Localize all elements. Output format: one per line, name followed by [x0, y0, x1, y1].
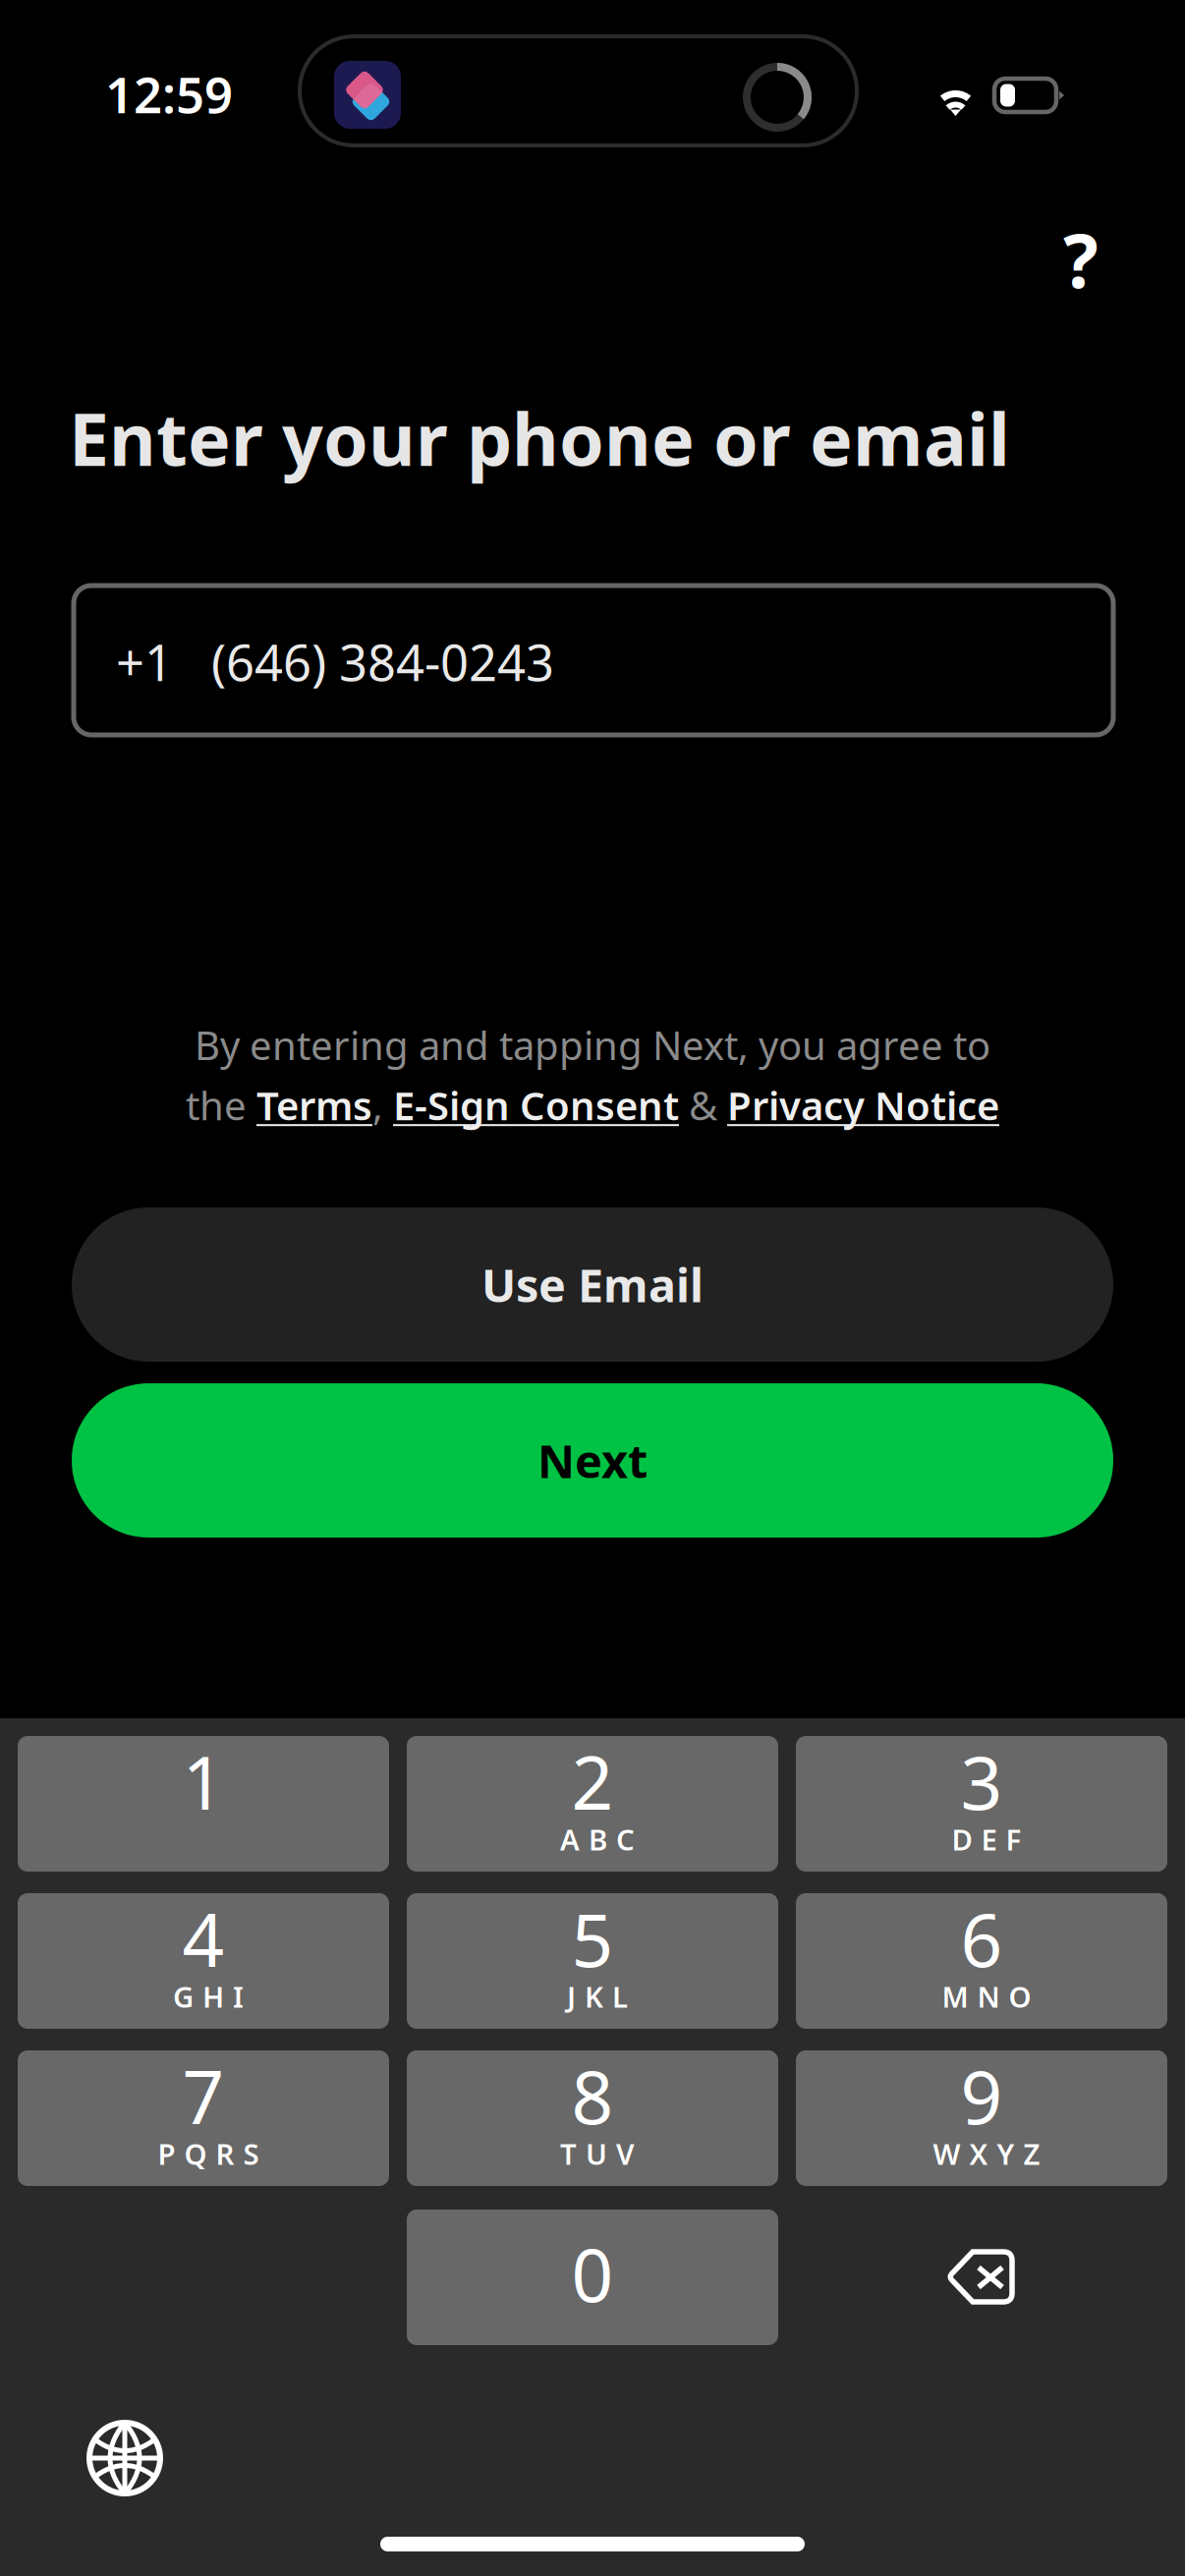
button[interactable]: Use Email	[72, 1207, 1113, 1362]
staticText: 3	[960, 1732, 1003, 1830]
button[interactable]: +1 (646) 384-0243	[74, 586, 1113, 735]
staticText: By entering and tapping Next, you agree …	[195, 1019, 990, 1071]
button[interactable]: 5	[407, 1893, 778, 2029]
staticText: &	[679, 1079, 727, 1131]
staticText: the	[186, 1079, 256, 1131]
staticText: ?	[1063, 211, 1099, 308]
staticText: ,	[372, 1079, 393, 1131]
staticText: E-Sign Consent	[393, 1079, 679, 1131]
button[interactable]: Next	[72, 1383, 1113, 1538]
button[interactable]: 3	[796, 1736, 1167, 1872]
staticText: 2	[571, 1732, 614, 1830]
button[interactable]: Delete	[796, 2210, 1167, 2345]
staticText: Use Email	[481, 1254, 704, 1315]
button[interactable]: 4	[18, 1893, 389, 2029]
staticText: 0	[571, 2225, 614, 2322]
button[interactable]: 6	[796, 1893, 1167, 2029]
staticText: Enter your phone or email	[69, 390, 1010, 486]
staticText: ABC	[560, 1820, 635, 1858]
staticText: 8	[571, 2047, 614, 2144]
staticText: DEF	[952, 1820, 1021, 1858]
staticText: Next	[537, 1430, 648, 1491]
button[interactable]: Help	[1027, 205, 1135, 313]
button[interactable]: Terms	[256, 1079, 372, 1131]
staticText: TUV	[560, 2134, 635, 2173]
staticText: MNO	[942, 1977, 1031, 2016]
staticText: JKL	[567, 1977, 628, 2016]
staticText: Privacy Notice	[727, 1079, 999, 1131]
staticText: Terms	[256, 1079, 372, 1131]
staticText: PQRS	[158, 2134, 259, 2173]
button[interactable]: 1	[18, 1736, 389, 1872]
staticText: 1	[182, 1732, 225, 1830]
staticText: GHI	[173, 1977, 244, 2016]
staticText: 6	[960, 1890, 1003, 1987]
button[interactable]: Privacy Notice	[727, 1079, 999, 1131]
button[interactable]: 2	[407, 1736, 778, 1872]
staticText: 4	[182, 1890, 225, 1987]
staticText: 9	[960, 2047, 1003, 2144]
button[interactable]: 9	[796, 2050, 1167, 2186]
button[interactable]: 8	[407, 2050, 778, 2186]
button[interactable]: 7	[18, 2050, 389, 2186]
button[interactable]: 0	[407, 2210, 778, 2345]
staticText: WXYZ	[933, 2134, 1040, 2173]
staticText: 12:59	[105, 61, 233, 127]
button[interactable]: Change keyboard	[67, 2400, 183, 2516]
staticText: 7	[182, 2047, 225, 2144]
button[interactable]: E-Sign Consent	[393, 1079, 679, 1131]
staticText: +1 (646) 384-0243	[116, 629, 554, 695]
staticText: 5	[571, 1890, 614, 1987]
